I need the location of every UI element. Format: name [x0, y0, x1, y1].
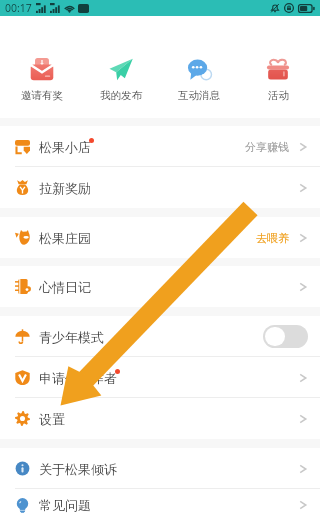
other: More [298, 462, 308, 476]
staticText: 我的发布 [100, 89, 142, 102]
button[interactable]: 我的 [241, 0, 317, 9]
staticText: 我的 [268, 0, 290, 9]
staticText: 心情日记 [39, 279, 91, 295]
staticText: 活动 [268, 89, 289, 102]
other: More [298, 371, 308, 385]
button[interactable]: 我的发布 [85, 20, 157, 102]
staticText: 拉新奖励 [39, 180, 91, 196]
button[interactable]: 拉新奖励 [0, 167, 320, 208]
button[interactable]: 松果小店 [0, 126, 320, 167]
button[interactable]: 设置 [0, 398, 320, 439]
staticText: 分享赚钱 [245, 140, 289, 154]
button[interactable]: 青少年模式开关 [263, 325, 308, 348]
staticText: 申请优质作者 [39, 370, 117, 386]
other: More [298, 140, 308, 154]
staticText: 00:17 [5, 1, 32, 15]
staticText: 关于松果倾诉 [39, 461, 117, 477]
other: More [298, 412, 308, 426]
staticText: 松果小店 [39, 139, 91, 155]
button[interactable]: 聊愈 [3, 0, 79, 9]
staticText: 常见问题 [39, 497, 91, 513]
staticText: 青少年模式 [39, 329, 104, 345]
button[interactable]: 松果庄园 [0, 217, 320, 258]
other: More [298, 181, 308, 195]
other: More [298, 231, 308, 245]
button[interactable]: 申请优质作者 [0, 357, 320, 398]
staticText: 松果庄园 [39, 230, 91, 246]
staticText: 聊愈 [30, 0, 52, 9]
staticText: 互动消息 [178, 89, 220, 102]
other: More [298, 498, 308, 512]
button[interactable]: 关于松果倾诉 [0, 448, 320, 489]
button[interactable]: 常见问题 [0, 489, 320, 521]
staticText: 设置 [39, 411, 65, 427]
button[interactable]: 活动 [242, 20, 314, 102]
button[interactable]: 心情日记 [0, 266, 320, 307]
button[interactable]: 互动消息 [163, 20, 235, 102]
button[interactable]: 发现 [82, 0, 158, 9]
other: More [298, 280, 308, 294]
button[interactable]: 青少年模式 [0, 316, 320, 357]
button[interactable]: 邀请有奖 [6, 20, 78, 102]
staticText: 邀请有奖 [21, 89, 63, 102]
staticText: 去喂养 [256, 231, 289, 245]
